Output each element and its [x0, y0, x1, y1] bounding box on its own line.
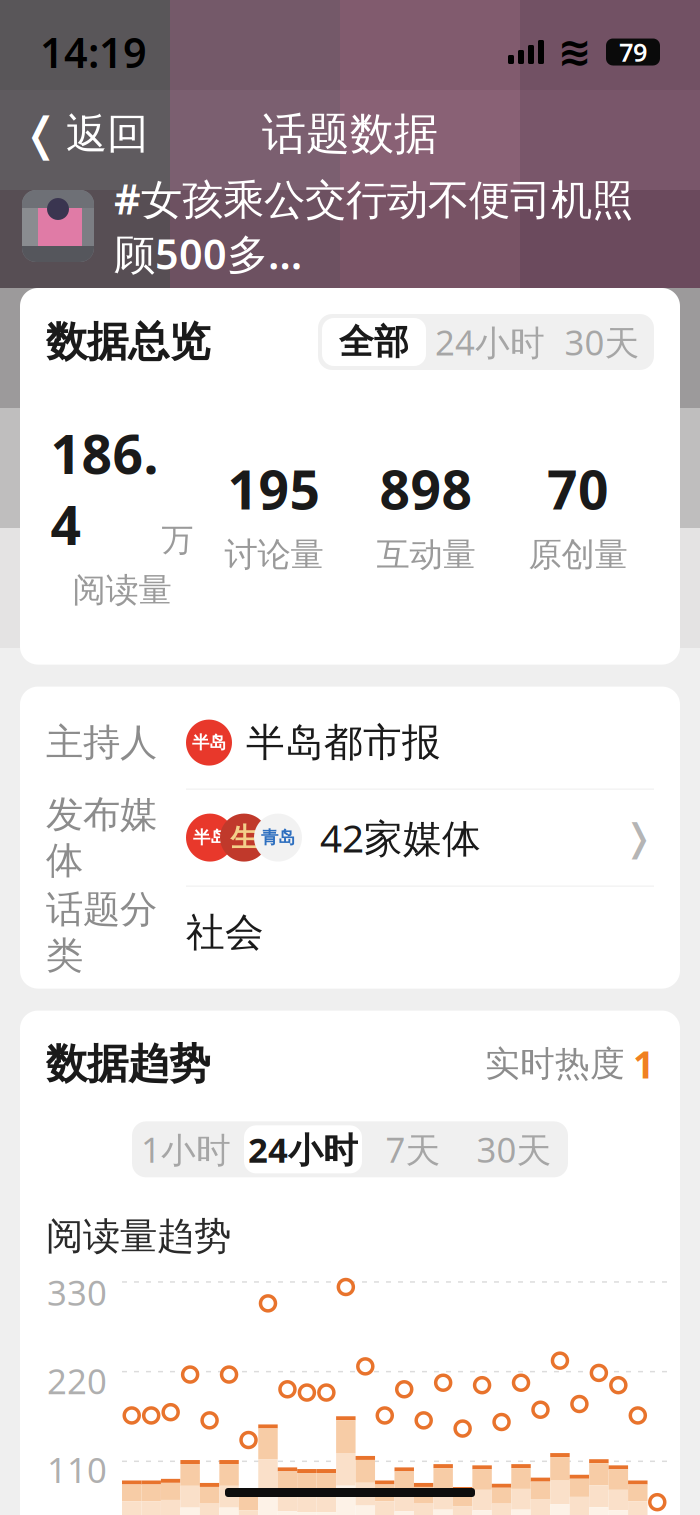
staticText: 全部 [339, 321, 409, 363]
staticText: 话题分类 [46, 887, 157, 978]
staticText: 195 [227, 453, 320, 524]
button[interactable]: 30天 [554, 318, 650, 366]
staticText: 7天 [385, 1126, 440, 1172]
staticText: 主持人 [46, 720, 157, 766]
staticText: 14:19 [40, 25, 147, 79]
staticText: 数据趋势 [46, 1039, 210, 1089]
staticText: 青岛 [261, 827, 295, 848]
staticText: 898 [379, 453, 472, 524]
button[interactable]: 24小时 [434, 318, 546, 366]
staticText: 24小时 [248, 1126, 358, 1172]
staticText: 返回 [66, 109, 148, 159]
staticText: 讨论量 [224, 534, 323, 575]
button[interactable]: 1小时 [136, 1125, 236, 1173]
staticText: 330 [47, 1269, 107, 1315]
button[interactable]: 24小时 [244, 1125, 362, 1173]
staticText: 发布媒体 [46, 792, 157, 883]
staticText: 70 [547, 453, 609, 524]
button[interactable]: 7天 [370, 1125, 456, 1173]
staticText: 互动量 [376, 534, 475, 575]
staticText: 社会 [186, 909, 264, 956]
button[interactable]: 全部 [322, 318, 426, 366]
button[interactable]: 30天 [464, 1125, 564, 1173]
staticText: 阅读量趋势 [46, 1213, 231, 1259]
button[interactable]: 发布媒体 [46, 790, 654, 886]
staticText: 数据总览 [46, 317, 210, 367]
staticText: 半岛 [193, 827, 227, 848]
staticText: 原创量 [528, 534, 627, 575]
staticText: 79 [619, 35, 647, 69]
staticText: 生 [230, 821, 257, 854]
staticText: ❬ [22, 108, 60, 160]
staticText: 30天 [476, 1126, 551, 1172]
staticText: 话题数据 [262, 107, 438, 161]
staticText: 1 [633, 1039, 654, 1089]
staticText: ❭ [623, 816, 654, 859]
staticText: 半岛 [192, 732, 226, 753]
button[interactable]: ❬ [4, 98, 166, 170]
staticText: 30天 [564, 319, 639, 365]
staticText: 220 [47, 1358, 107, 1404]
staticText: 万 [161, 520, 193, 560]
staticText: ≋ [558, 29, 592, 75]
staticText: 42家媒体 [320, 812, 481, 863]
staticText: 半岛都市报 [246, 719, 441, 766]
staticText: 24小时 [435, 319, 545, 365]
staticText: #女孩乘公交行动不便司机照顾500多… [114, 171, 633, 281]
staticText: 实时热度 [485, 1043, 625, 1085]
staticText: 阅读量 [72, 570, 171, 610]
staticText: 110 [47, 1446, 107, 1492]
staticText: 1小时 [141, 1126, 231, 1172]
staticText: 186.4 [50, 418, 158, 560]
